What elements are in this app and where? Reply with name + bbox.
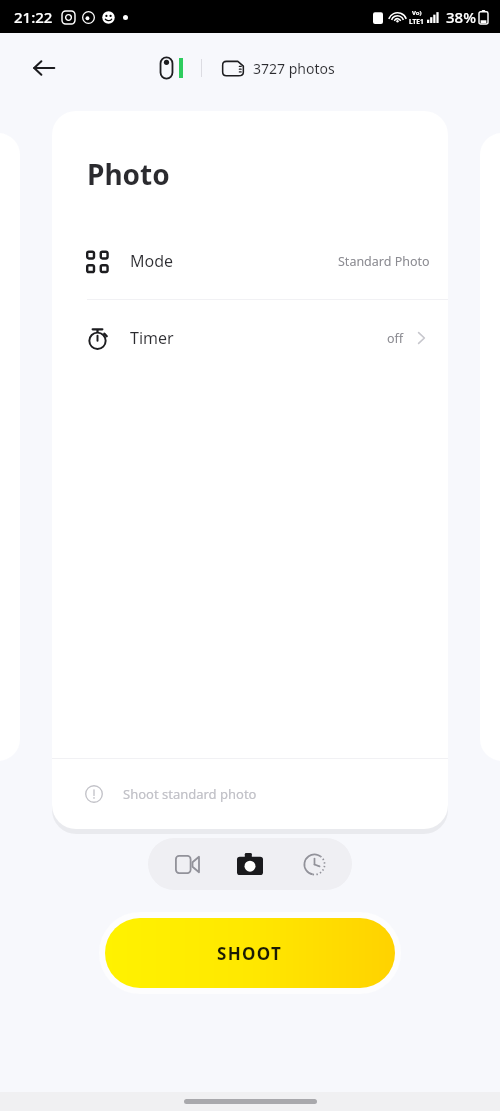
staticText: LTE1 xyxy=(409,17,424,26)
staticText: 3727 photos xyxy=(253,59,335,78)
staticText: Mode xyxy=(130,250,174,272)
staticText: Shoot standard photo xyxy=(123,785,257,803)
button[interactable]: Shoot standard photo xyxy=(52,759,448,829)
staticText: 21:22 xyxy=(14,7,53,27)
staticText: Timer xyxy=(130,327,174,349)
staticText: Vo) xyxy=(412,9,422,17)
button[interactable]: Timer xyxy=(52,300,448,376)
button[interactable]: Timelapse mode xyxy=(289,839,339,889)
button[interactable]: SHOOT xyxy=(105,918,395,988)
button[interactable]: Mode xyxy=(52,223,448,299)
staticText: Photo xyxy=(87,155,170,193)
staticText: off xyxy=(387,330,404,347)
button[interactable]: Camera battery xyxy=(160,57,183,79)
button[interactable]: Video mode xyxy=(162,839,212,889)
button[interactable]: 3727 photos xyxy=(222,59,335,78)
staticText: SHOOT xyxy=(217,942,283,965)
button[interactable]: Photo mode xyxy=(225,839,275,889)
staticText: Standard Photo xyxy=(338,253,430,270)
staticText: 38% xyxy=(446,7,476,27)
button[interactable]: Back xyxy=(22,46,66,90)
